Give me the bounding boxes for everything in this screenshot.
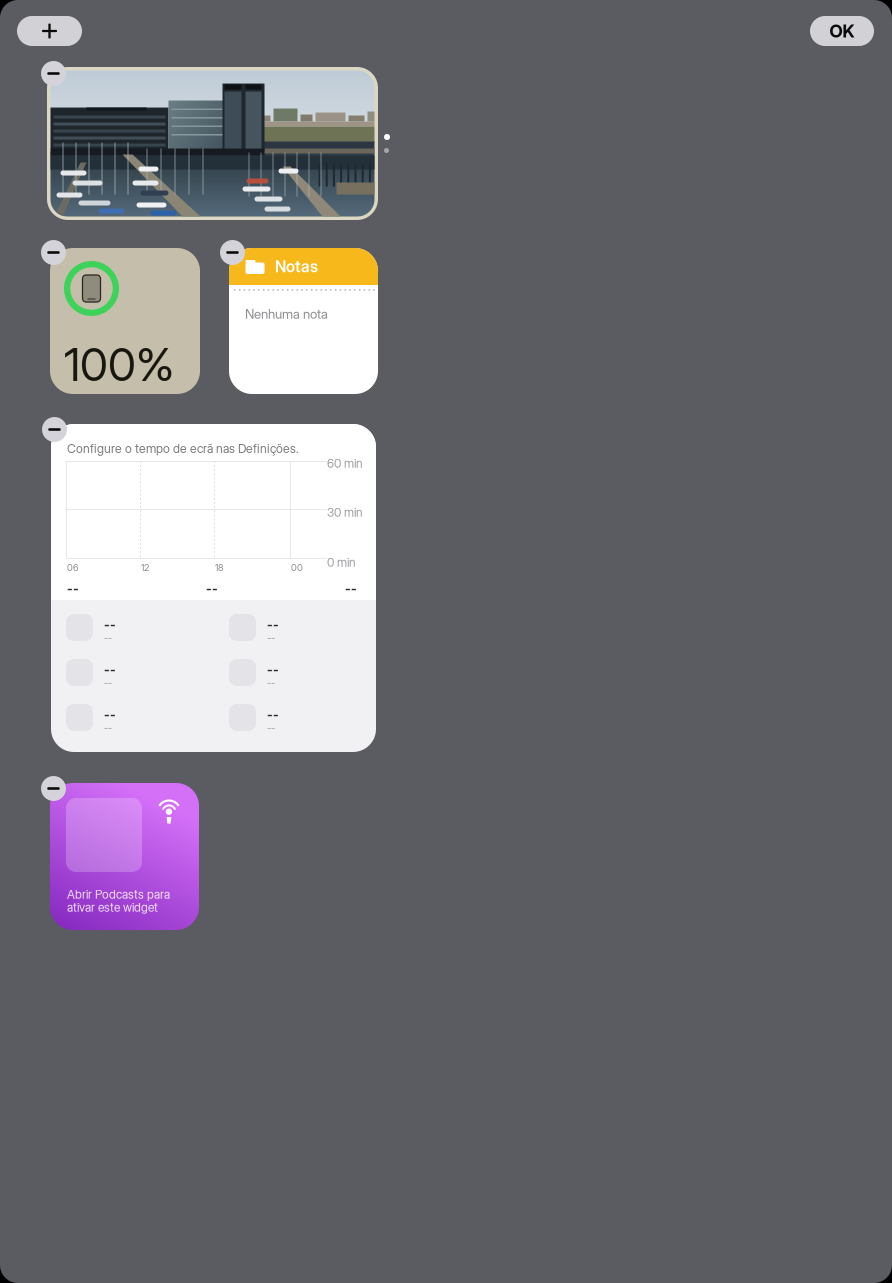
staticText: -- — [104, 677, 112, 688]
button[interactable]: Remove widget — [220, 240, 245, 265]
button[interactable]: Remove widget — [41, 240, 66, 265]
staticText: 100% — [64, 337, 174, 392]
staticText: 06 — [67, 562, 78, 573]
staticText: -- — [104, 617, 116, 632]
staticText: ativar este widget — [67, 900, 158, 914]
staticText: OK — [829, 20, 854, 42]
staticText: Notas — [275, 257, 318, 276]
staticText: -- — [104, 707, 116, 722]
button[interactable] — [47, 67, 378, 220]
staticText: Nenhuma nota — [245, 306, 328, 322]
staticText: -- — [104, 722, 112, 733]
staticText: Configure o tempo de ecrã nas Definições… — [67, 441, 299, 456]
staticText: Abrir Podcasts para — [67, 887, 170, 901]
button[interactable]: Remove widget — [41, 776, 66, 801]
staticText: -- — [267, 677, 275, 688]
staticText: -- — [267, 707, 279, 722]
staticText: 30 min — [327, 505, 363, 519]
staticText: 00 — [291, 562, 303, 573]
button[interactable]: Remove widget — [42, 417, 67, 442]
button[interactable]: Notas — [229, 248, 378, 394]
staticText: -- — [104, 662, 116, 677]
staticText: -- — [104, 632, 112, 643]
button[interactable]: Add widget — [17, 16, 82, 46]
staticText: -- — [267, 632, 275, 643]
staticText: -- — [67, 581, 79, 596]
staticText: -- — [206, 581, 218, 596]
button[interactable]: Abrir Podcasts para — [50, 783, 199, 930]
staticText: -- — [267, 617, 279, 632]
button[interactable]: Configure o tempo de ecrã nas Definições… — [51, 424, 376, 752]
staticText: -- — [345, 581, 357, 596]
button[interactable]: Remove widget — [41, 61, 66, 86]
staticText: 60 min — [327, 456, 363, 470]
staticText: -- — [267, 722, 275, 733]
button[interactable]: 100% — [50, 248, 200, 394]
staticText: -- — [267, 662, 279, 677]
staticText: 0 min — [327, 555, 356, 569]
staticText: 12 — [141, 562, 149, 573]
staticText: 18 — [215, 562, 223, 573]
button[interactable]: OK — [810, 16, 874, 46]
